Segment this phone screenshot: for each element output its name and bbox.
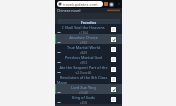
- staticText: Peerless Martial God: [57, 55, 110, 60]
- button[interactable]: Select: [111, 87, 116, 92]
- staticText: I Shall Seal the Heavens: [57, 25, 110, 30]
- button[interactable]: Absolute Choice: [55, 34, 122, 44]
- button[interactable]: I Shall Seal the Heavens: [55, 24, 122, 34]
- staticText: c953: [61, 61, 106, 64]
- staticText: King of Gods: [57, 95, 110, 100]
- button[interactable]: Select: [111, 57, 116, 62]
- button[interactable]: King of Gods: [55, 94, 122, 104]
- staticText: c192: [61, 41, 106, 44]
- button[interactable]: Peerless Martial God: [55, 54, 122, 64]
- staticText: c7c40: [61, 91, 106, 94]
- button[interactable]: True Martial World: [55, 44, 122, 54]
- button[interactable]: Tabs: [104, 2, 108, 6]
- staticText: c849: [61, 51, 106, 54]
- staticText: c258: [61, 101, 106, 104]
- button[interactable]: More options: [117, 2, 121, 6]
- button[interactable]: Favorites: [58, 19, 120, 24]
- staticText: True Martial World: [57, 45, 110, 50]
- button[interactable]: Chinese novel: [55, 8, 122, 13]
- staticText: Ate the Seapent Part of the: [57, 65, 110, 70]
- staticText: novelupdates.com: [63, 2, 98, 7]
- staticText: Favorites: [81, 20, 97, 24]
- staticText: Lord Xue Ying: [57, 85, 110, 90]
- staticText: v2.0 por46: [61, 71, 106, 74]
- button[interactable]: novelupdates.com: [57, 1, 103, 7]
- button[interactable]: Revolution of the 8th Class: [55, 74, 122, 84]
- staticText: Absolute Choice: [57, 35, 110, 40]
- button[interactable]: Select: [111, 97, 116, 102]
- button[interactable]: Select: [111, 47, 116, 52]
- staticText: Mage: [57, 80, 110, 84]
- staticText: Revolution of the 8th Class: [57, 75, 110, 80]
- staticText: c1264: [61, 31, 106, 34]
- staticText: Chinese novel: [57, 8, 81, 13]
- button[interactable]: Select: [111, 27, 116, 32]
- button[interactable]: Account: [109, 2, 114, 7]
- button[interactable]: Select: [111, 37, 116, 42]
- button[interactable]: Lord Xue Ying: [55, 84, 122, 94]
- button[interactable]: Ate the Seapent Part of the: [55, 64, 122, 74]
- button[interactable]: Select: [111, 67, 116, 72]
- button[interactable]: Select: [111, 77, 116, 82]
